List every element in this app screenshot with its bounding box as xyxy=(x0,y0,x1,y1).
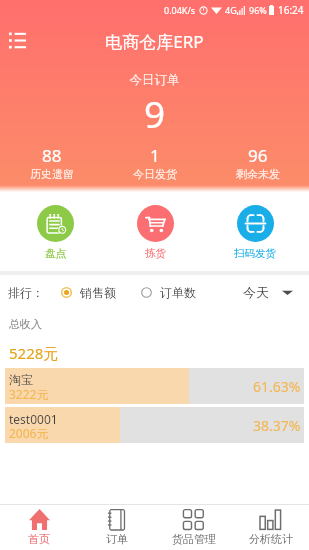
staticText: 拣货 xyxy=(145,247,166,260)
staticText: 分析统计 xyxy=(249,532,293,546)
button[interactable]: 盘点 xyxy=(6,205,105,260)
button[interactable]: 销售额 xyxy=(61,285,116,300)
staticText: 排行： xyxy=(8,285,44,300)
staticText: 盘点 xyxy=(45,247,66,260)
staticText: 今日订单 xyxy=(0,72,309,88)
staticText: 今日发货 xyxy=(133,167,177,181)
staticText: 38.37% xyxy=(253,416,301,435)
staticText: 订单数 xyxy=(160,285,196,300)
button[interactable]: test0001 xyxy=(5,407,304,443)
button[interactable]: 订单 xyxy=(78,509,155,546)
staticText: 首页 xyxy=(28,532,50,546)
staticText: 今天 xyxy=(243,284,269,300)
staticText: 2006元 xyxy=(9,425,49,441)
staticText: 5228元 xyxy=(9,343,59,363)
staticText: 扫码发货 xyxy=(234,247,276,260)
button[interactable]: 订单数 xyxy=(141,285,196,300)
staticText: 1 xyxy=(150,144,160,167)
button[interactable]: 今天 xyxy=(243,284,293,300)
staticText: test0001 xyxy=(9,411,58,427)
button[interactable]: 货品管理 xyxy=(155,509,232,546)
button[interactable]: 拣货 xyxy=(105,205,205,260)
staticText: 淘宝 xyxy=(9,372,33,387)
staticText: 3222元 xyxy=(9,386,49,402)
staticText: 61.63% xyxy=(253,377,301,396)
staticText: 4G xyxy=(225,4,237,16)
staticText: 销售额 xyxy=(80,285,116,300)
staticText: 订单 xyxy=(106,532,128,546)
staticText: 0.04K/s xyxy=(164,4,196,16)
staticText: 历史遗留 xyxy=(30,167,74,181)
staticText: 货品管理 xyxy=(172,532,216,546)
button[interactable]: 淘宝 xyxy=(5,368,304,404)
staticText: 96% xyxy=(249,4,267,16)
button[interactable]: 首页 xyxy=(0,509,78,546)
staticText: 剩余未发 xyxy=(236,167,280,181)
staticText: 总收入 xyxy=(9,317,42,331)
staticText: 9 xyxy=(0,88,309,138)
staticText: 16:24 xyxy=(278,3,304,17)
staticText: 88 xyxy=(42,144,62,167)
button[interactable]: Menu xyxy=(4,26,30,52)
button[interactable]: 扫码发货 xyxy=(205,205,305,260)
staticText: 电商仓库ERP xyxy=(0,30,309,53)
button[interactable]: 分析统计 xyxy=(232,509,309,546)
staticText: 96 xyxy=(248,144,268,167)
